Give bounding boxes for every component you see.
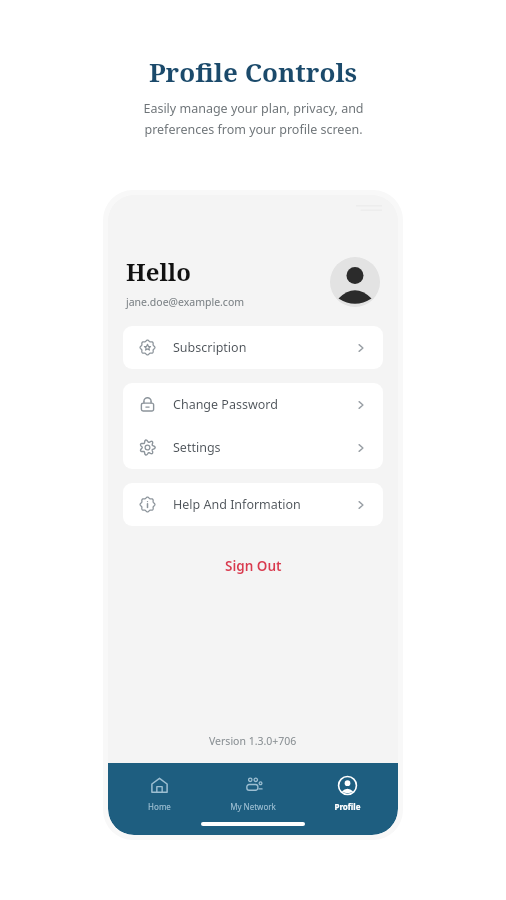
other: My Network <box>244 776 263 795</box>
button[interactable]: Sign Out <box>211 552 296 580</box>
staticText: Version 1.3.0+706 <box>209 734 297 748</box>
staticText: Subscription <box>173 339 247 356</box>
button[interactable]: Change Password <box>123 383 383 426</box>
staticText: Hello <box>126 255 192 288</box>
staticText: Easily manage your plan, privacy, and <box>143 100 364 117</box>
staticText: Settings <box>173 439 221 456</box>
staticText: Profile <box>334 801 361 812</box>
staticText: Profile Controls <box>149 54 358 89</box>
button[interactable]: Help And Information <box>123 483 383 526</box>
button[interactable]: Profile avatar <box>330 257 380 307</box>
button[interactable]: My Network <box>210 774 296 814</box>
other: Home <box>150 776 169 795</box>
button[interactable]: Subscription <box>123 326 383 369</box>
staticText: My Network <box>230 801 276 812</box>
staticText: jane.doe@example.com <box>126 295 245 309</box>
staticText: Help And Information <box>173 496 301 513</box>
button[interactable]: Settings <box>123 426 383 469</box>
staticText: Change Password <box>173 396 278 413</box>
button[interactable]: Profile <box>304 774 390 814</box>
button[interactable]: Home <box>116 774 202 814</box>
staticText: Home <box>148 801 171 812</box>
staticText: preferences from your profile screen. <box>144 121 363 138</box>
other: Profile <box>338 776 357 795</box>
staticText: Sign Out <box>225 557 282 575</box>
